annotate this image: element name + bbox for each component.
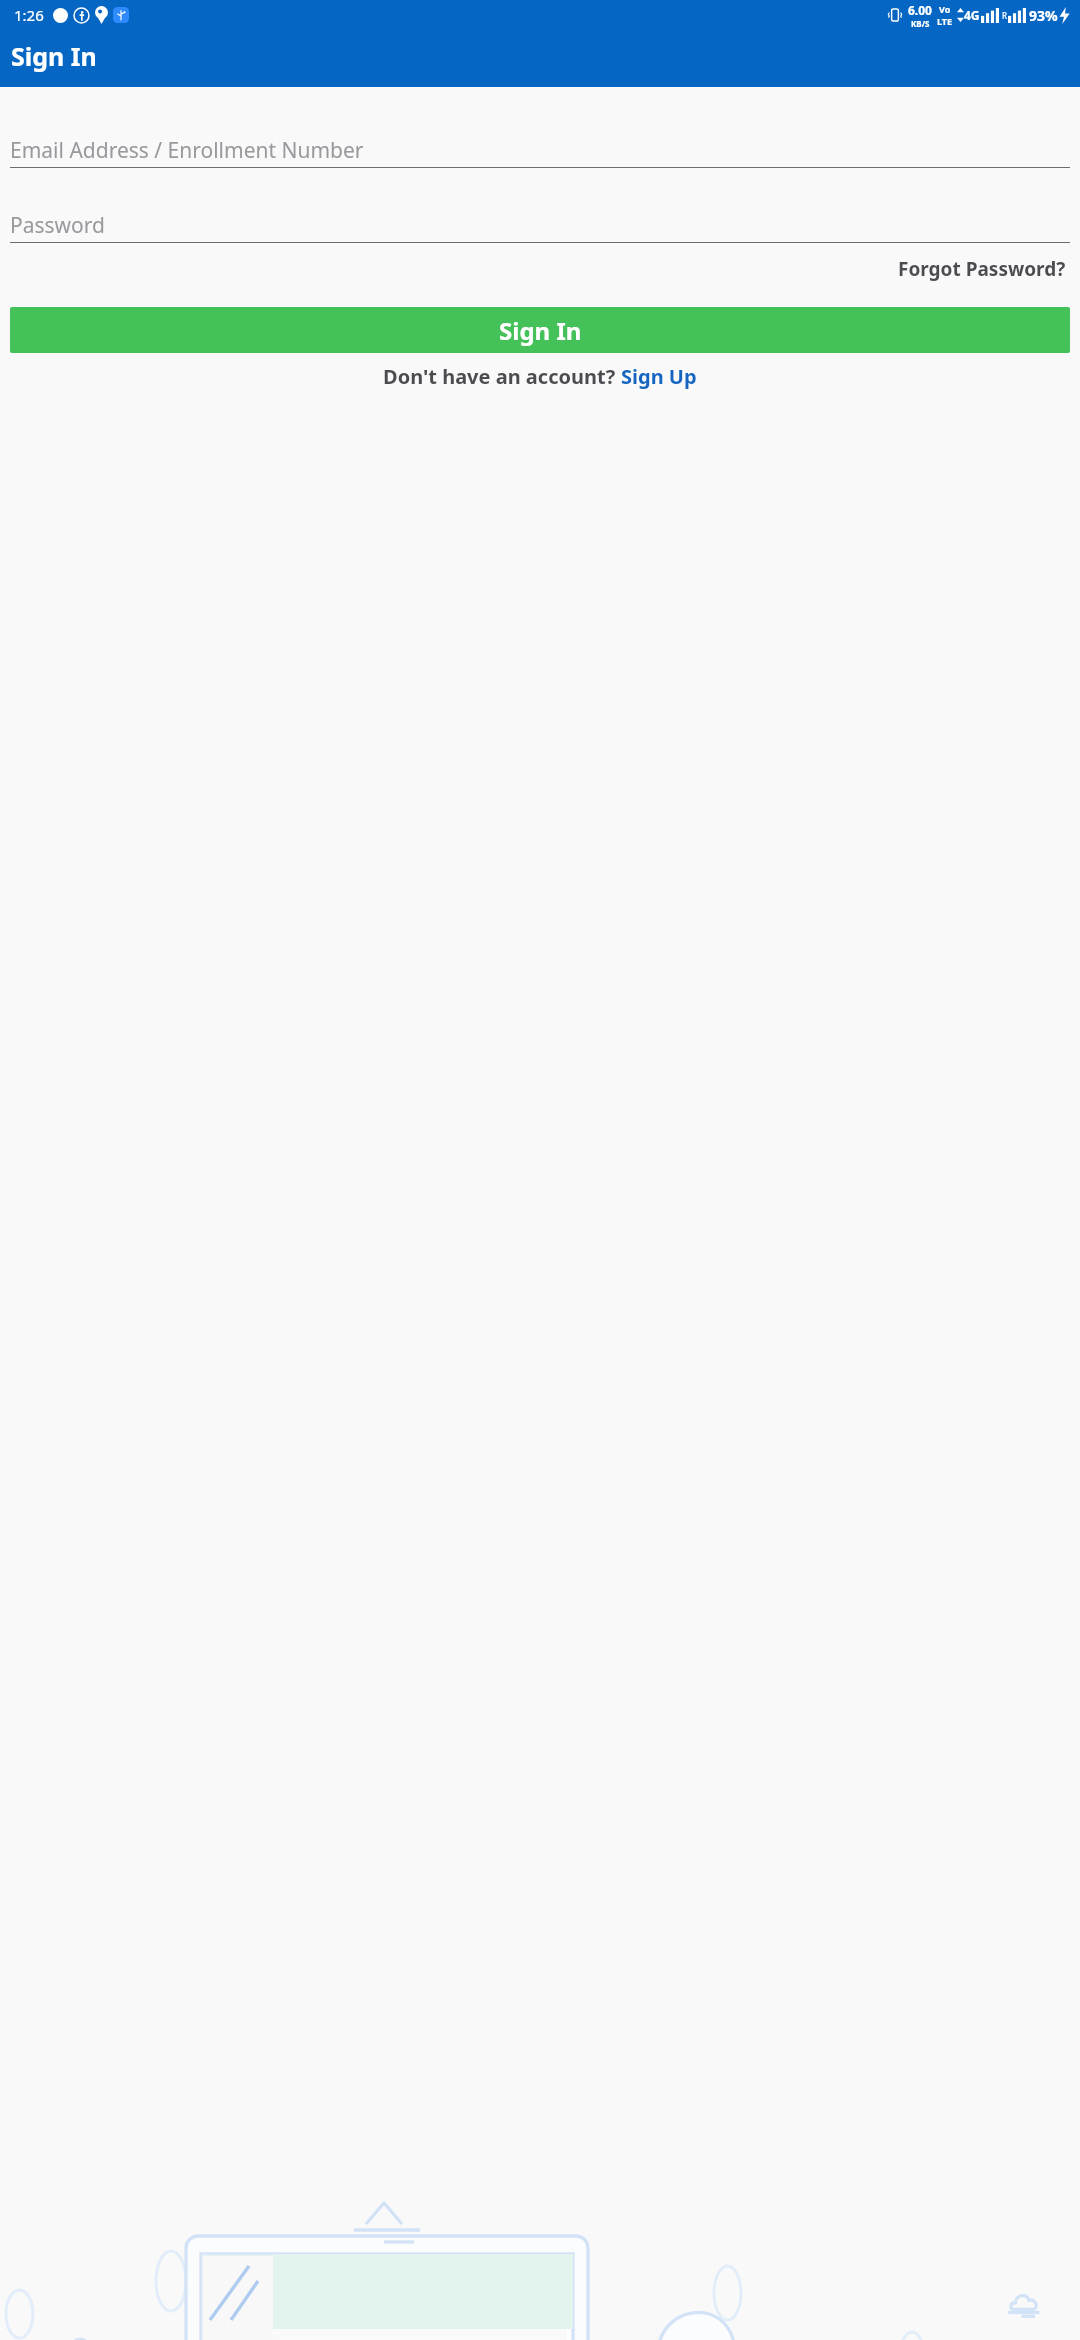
staticText: 93% (1029, 6, 1058, 25)
staticText: Sign In (499, 314, 582, 347)
staticText: Sign In (11, 39, 97, 73)
staticText: KB/S (911, 18, 930, 29)
button[interactable]: Sign Up (621, 363, 697, 390)
staticText: LTE (937, 15, 953, 27)
staticText: 6.00 (908, 2, 932, 18)
button[interactable]: Email Address / Enrollment Number (10, 133, 1070, 167)
staticText: Password (10, 211, 105, 240)
staticText: Forgot Password? (898, 256, 1066, 282)
staticText: Don't have an account? (383, 363, 621, 390)
button[interactable]: Password (10, 208, 1070, 242)
staticText: Sign Up (621, 363, 697, 390)
staticText: 4G (964, 7, 980, 23)
staticText: 1:26 (14, 5, 44, 25)
staticText: Vo (939, 3, 951, 15)
button[interactable]: Forgot Password? (894, 252, 1070, 286)
staticText: R (1002, 10, 1007, 21)
staticText: Email Address / Enrollment Number (10, 136, 364, 165)
button[interactable]: Sign In (10, 307, 1070, 353)
